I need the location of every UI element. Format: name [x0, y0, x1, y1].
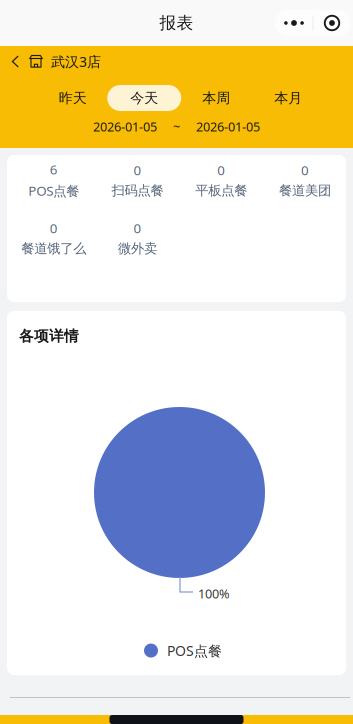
staticText: 本周 [202, 89, 230, 107]
button[interactable]: 武汉3店 [0, 46, 353, 77]
staticText: 各项详情 [19, 327, 79, 345]
staticText: 今天 [130, 89, 158, 107]
staticText: 6 [50, 160, 58, 178]
button[interactable]: 今天 [108, 85, 180, 111]
staticText: 报表 [159, 12, 193, 33]
staticText: POS点餐 [167, 641, 222, 660]
staticText: 微外卖 [118, 240, 157, 257]
button[interactable]: 昨天 [37, 85, 108, 111]
staticText: POS点餐 [28, 181, 79, 200]
staticText: 2026-01-05 [93, 118, 157, 135]
staticText: 餐道饿了么 [21, 240, 86, 257]
staticText: 100% [198, 585, 230, 602]
button[interactable]: 本月 [252, 85, 324, 111]
staticText: ~ [173, 118, 180, 135]
staticText: 0 [301, 161, 309, 179]
button[interactable]: 本周 [180, 85, 252, 111]
staticText: 昨天 [59, 89, 87, 107]
staticText: 2026-01-05 [196, 118, 260, 135]
staticText: 0 [50, 219, 58, 237]
staticText: 餐道美团 [279, 182, 331, 199]
staticText: 0 [134, 161, 142, 179]
staticText: 0 [133, 219, 141, 237]
staticText: 本月 [274, 89, 302, 107]
staticText: 平板点餐 [195, 182, 247, 199]
staticText: 0 [217, 161, 225, 179]
staticText: 扫码点餐 [112, 182, 164, 199]
staticText: 武汉3店 [51, 52, 101, 71]
button[interactable]: Menu [275, 10, 351, 36]
